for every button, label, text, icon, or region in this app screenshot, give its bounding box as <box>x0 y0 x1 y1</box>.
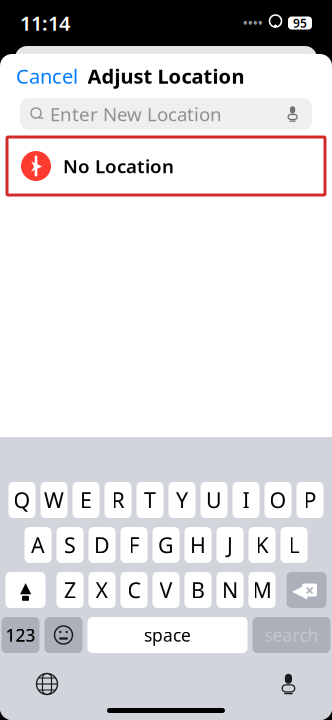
staticText: Enter New Location <box>50 102 222 126</box>
button[interactable]: ➤ <box>7 137 325 195</box>
staticText: C <box>127 576 140 604</box>
button[interactable]: L <box>280 527 307 563</box>
button[interactable]: S <box>56 527 83 563</box>
button[interactable]: M <box>248 572 275 608</box>
staticText: V <box>159 576 172 604</box>
button[interactable]: H <box>184 527 211 563</box>
button[interactable]: search <box>252 617 330 653</box>
staticText: L <box>288 531 299 559</box>
button[interactable]: Dictate <box>283 102 302 125</box>
staticText: space <box>144 623 191 646</box>
staticText: O <box>269 486 286 514</box>
staticText: I <box>242 486 249 514</box>
staticText: ➤ <box>29 157 42 175</box>
staticText: 11:14 <box>20 10 70 36</box>
button[interactable]: Q <box>8 482 35 518</box>
staticText: Cancel <box>16 63 78 89</box>
staticText: R <box>111 486 124 514</box>
staticText: J <box>227 531 233 559</box>
button[interactable]: K <box>248 527 275 563</box>
button[interactable]: B <box>184 572 211 608</box>
button[interactable]: R <box>104 482 131 518</box>
staticText: 95 <box>293 15 307 31</box>
staticText: M <box>252 576 271 604</box>
button[interactable]: Dictate <box>271 663 306 704</box>
staticText: No Location <box>63 154 174 178</box>
button[interactable]: E <box>72 482 99 518</box>
staticText: ◀ <box>292 579 307 601</box>
button[interactable]: Shift <box>5 572 45 608</box>
button[interactable]: I <box>232 482 259 518</box>
staticText: Adjust Location <box>87 63 244 89</box>
button[interactable]: T <box>136 482 163 518</box>
staticText: •••• <box>243 15 263 31</box>
button[interactable]: O <box>264 482 291 518</box>
button[interactable]: Next keyboard <box>26 663 68 705</box>
button[interactable]: U <box>200 482 227 518</box>
button[interactable]: Cancel <box>0 53 94 99</box>
button[interactable]: Delete <box>286 572 326 608</box>
button[interactable]: W <box>40 482 67 518</box>
button[interactable]: Z <box>56 572 83 608</box>
staticText: U <box>206 486 222 514</box>
staticText: W <box>44 486 64 514</box>
button[interactable]: D <box>88 527 115 563</box>
button[interactable]: P <box>296 482 323 518</box>
staticText: B <box>191 576 205 604</box>
button[interactable]: C <box>120 572 147 608</box>
button[interactable]: F <box>120 527 147 563</box>
staticText: D <box>94 531 110 559</box>
staticText: P <box>303 486 316 514</box>
button[interactable]: J <box>216 527 243 563</box>
staticText: X <box>95 576 108 604</box>
staticText: S <box>64 531 76 559</box>
staticText: A <box>31 531 45 559</box>
button[interactable]: G <box>152 527 179 563</box>
staticText: H <box>190 531 206 559</box>
button[interactable]: 123 <box>1 617 39 653</box>
staticText: Q <box>13 486 30 514</box>
staticText: search <box>264 623 318 646</box>
staticText: 123 <box>5 623 35 646</box>
staticText: T <box>144 486 156 514</box>
button[interactable]: V <box>152 572 179 608</box>
staticText: × <box>305 579 314 601</box>
button[interactable]: Y <box>168 482 195 518</box>
button[interactable]: space <box>87 617 247 653</box>
staticText: F <box>128 531 139 559</box>
staticText: N <box>222 576 238 604</box>
staticText: K <box>255 531 268 559</box>
staticText: E <box>80 486 92 514</box>
button[interactable]: A <box>24 527 51 563</box>
button[interactable]: X <box>88 572 115 608</box>
button[interactable]: Emoji <box>44 617 82 653</box>
staticText: ▲ <box>20 579 31 596</box>
button[interactable]: N <box>216 572 243 608</box>
staticText: G <box>158 531 174 559</box>
staticText: Y <box>176 486 188 514</box>
staticText: Z <box>64 576 76 604</box>
